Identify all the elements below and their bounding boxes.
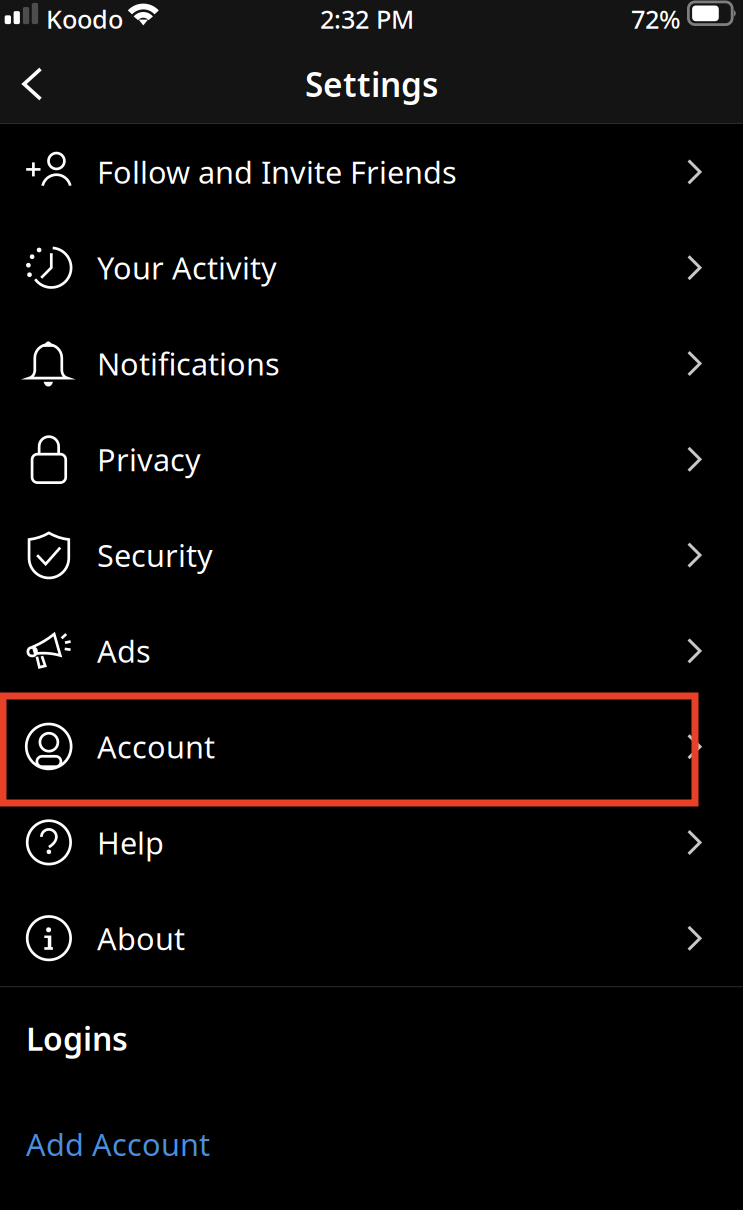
staticText: 2:32 PM (320, 2, 414, 36)
staticText: Notifications (97, 343, 280, 384)
staticText: Your Activity (97, 247, 277, 288)
staticText: Add Account (26, 1124, 210, 1164)
button[interactable]: Your Activity (0, 220, 743, 316)
button[interactable]: About (0, 890, 743, 986)
button[interactable]: Follow and Invite Friends (0, 124, 743, 220)
button[interactable]: Security (0, 507, 743, 603)
staticText: About (97, 918, 185, 959)
staticText: Koodo (46, 2, 123, 36)
staticText: Account (97, 726, 215, 767)
staticText: 72% (631, 2, 681, 36)
button[interactable]: Add Account (0, 1060, 743, 1164)
button[interactable]: Back (0, 45, 62, 123)
staticText: Help (97, 822, 164, 863)
button[interactable]: Notifications (0, 316, 743, 411)
staticText: Logins (26, 1017, 128, 1060)
button[interactable]: Help (0, 795, 743, 890)
staticText: Ads (97, 630, 151, 671)
button[interactable]: Privacy (0, 411, 743, 507)
staticText: Follow and Invite Friends (97, 151, 457, 192)
button[interactable]: Ads (0, 603, 743, 699)
staticText: Privacy (97, 439, 201, 480)
staticText: Security (97, 535, 213, 575)
staticText: Settings (305, 62, 438, 106)
button[interactable]: Account (0, 699, 743, 795)
